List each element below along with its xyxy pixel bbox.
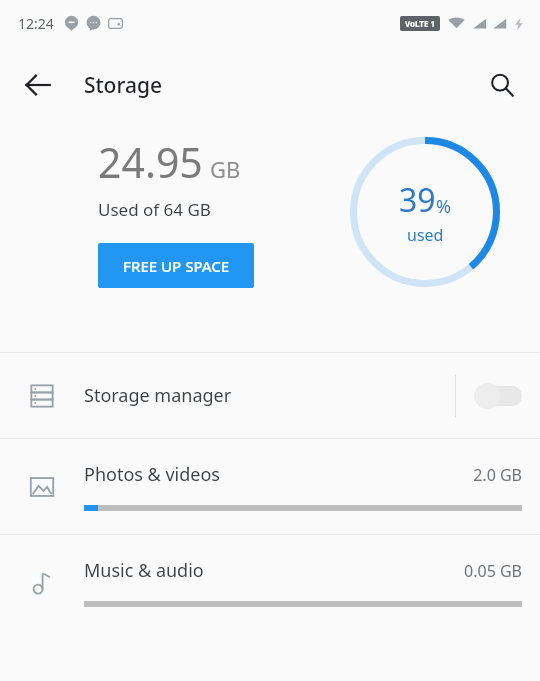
button[interactable]: Storage manager toggle — [456, 353, 540, 438]
button[interactable]: Storage manager — [0, 353, 540, 438]
button[interactable]: Photos & videos — [0, 439, 540, 534]
button[interactable]: Search — [476, 59, 528, 111]
staticText: GB — [210, 154, 241, 184]
staticText: 0.05 GB — [464, 560, 522, 582]
button[interactable]: FREE UP SPACE — [98, 243, 254, 288]
staticText: 39 — [399, 178, 436, 222]
staticText: Used of 64 GB — [98, 198, 211, 221]
button[interactable]: Music & audio — [0, 535, 540, 630]
staticText: 12:24 — [18, 14, 54, 33]
staticText: Storage — [84, 71, 162, 100]
button[interactable]: Back — [10, 57, 66, 113]
staticText: used — [407, 224, 444, 246]
staticText: Photos & videos — [84, 462, 220, 487]
staticText: 2.0 GB — [473, 464, 522, 486]
staticText: Music & audio — [84, 558, 204, 583]
staticText: Storage manager — [84, 383, 455, 408]
staticText: VoLTE 1 — [405, 18, 436, 29]
staticText: % — [436, 194, 451, 219]
staticText: 24.95 — [98, 134, 203, 190]
staticText: FREE UP SPACE — [123, 256, 230, 276]
